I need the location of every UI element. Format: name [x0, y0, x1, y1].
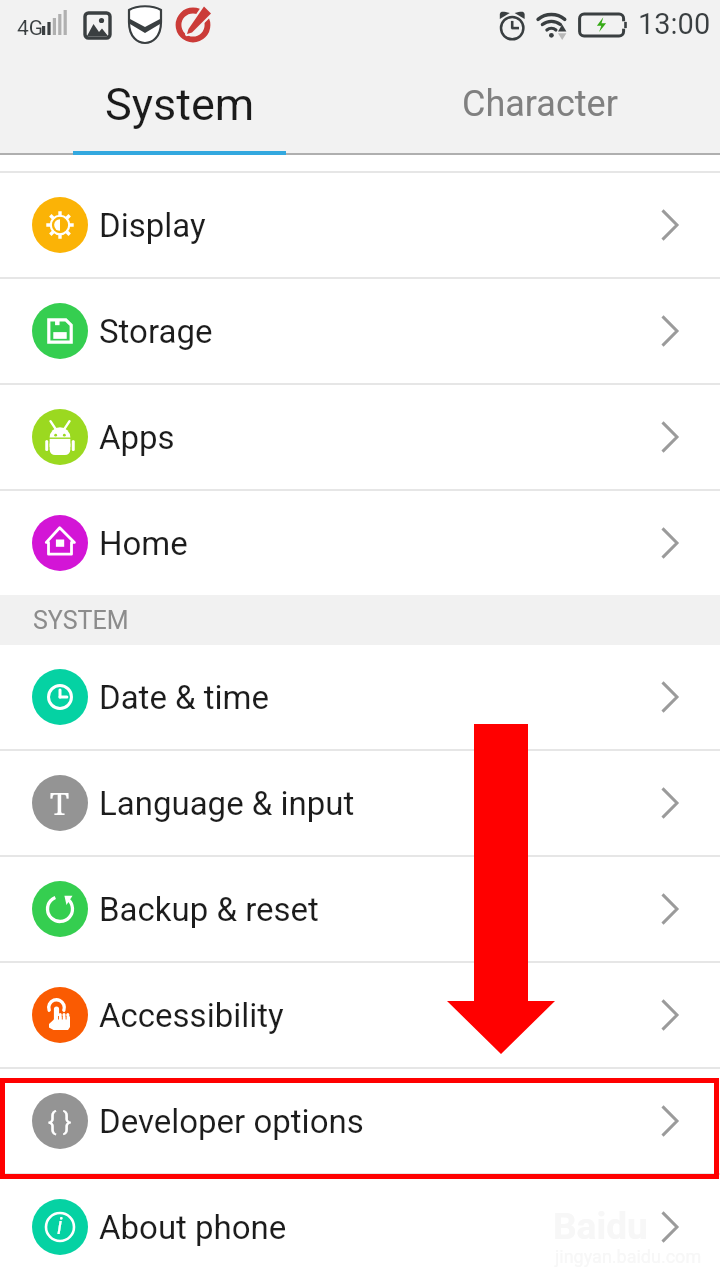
- button[interactable]: Date & time: [0, 645, 720, 749]
- staticText: Language & input: [99, 784, 355, 823]
- staticText: i: [57, 1213, 63, 1240]
- staticText: jingyan.baidu.com: [555, 1246, 702, 1267]
- button[interactable]: Display: [0, 173, 720, 277]
- button[interactable]: Storage: [0, 279, 720, 383]
- staticText: Baidu: [553, 1205, 648, 1248]
- staticText: Home: [99, 524, 188, 563]
- staticText: Character: [462, 83, 618, 125]
- button[interactable]: System: [0, 55, 360, 153]
- staticText: SYSTEM: [33, 606, 129, 635]
- staticText: Apps: [99, 418, 175, 457]
- staticText: Storage: [99, 312, 213, 351]
- staticText: Date & time: [99, 678, 270, 717]
- button[interactable]: T: [0, 751, 720, 855]
- staticText: Display: [99, 206, 206, 245]
- staticText: 13:00: [638, 7, 711, 41]
- staticText: Accessibility: [99, 996, 284, 1035]
- button[interactable]: { }: [0, 1069, 720, 1173]
- staticText: 4G: [17, 16, 44, 41]
- button[interactable]: Character: [360, 55, 720, 153]
- staticText: About phone: [99, 1208, 287, 1247]
- button[interactable]: Apps: [0, 385, 720, 489]
- staticText: System: [105, 78, 255, 131]
- staticText: Backup & reset: [99, 890, 319, 929]
- button[interactable]: i: [0, 1175, 720, 1279]
- staticText: T: [50, 782, 70, 824]
- button[interactable]: Backup & reset: [0, 857, 720, 961]
- staticText: Developer options: [99, 1102, 364, 1141]
- staticText: { }: [48, 1107, 72, 1136]
- button[interactable]: Home: [0, 491, 720, 595]
- button[interactable]: Accessibility: [0, 963, 720, 1067]
